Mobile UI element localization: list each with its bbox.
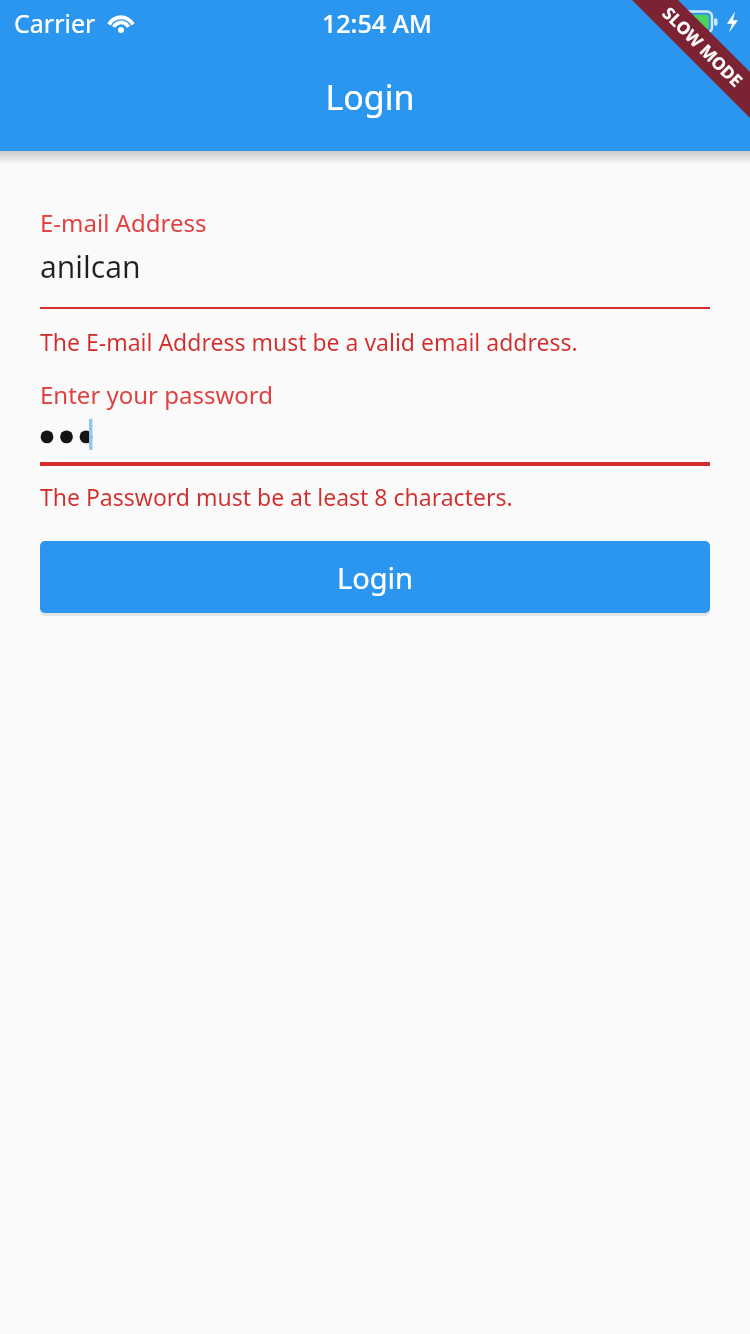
staticText: The E-mail Address must be a valid email… [40, 326, 578, 357]
staticText: Enter your password [40, 378, 274, 411]
staticText: E-mail Address [40, 206, 207, 239]
button[interactable]: E-mail Address [40, 206, 710, 309]
staticText: 12:54 AM [322, 6, 432, 40]
other: Slow mode indicator [600, 0, 750, 150]
button[interactable]: Login [40, 541, 710, 613]
staticText: Carrier [14, 6, 96, 40]
staticText: The Password must be at least 8 characte… [40, 481, 513, 512]
staticText: Login [325, 74, 415, 120]
staticText: Login [337, 558, 413, 597]
button[interactable]: Enter your password [40, 378, 710, 466]
staticText: anilcan [40, 246, 141, 287]
